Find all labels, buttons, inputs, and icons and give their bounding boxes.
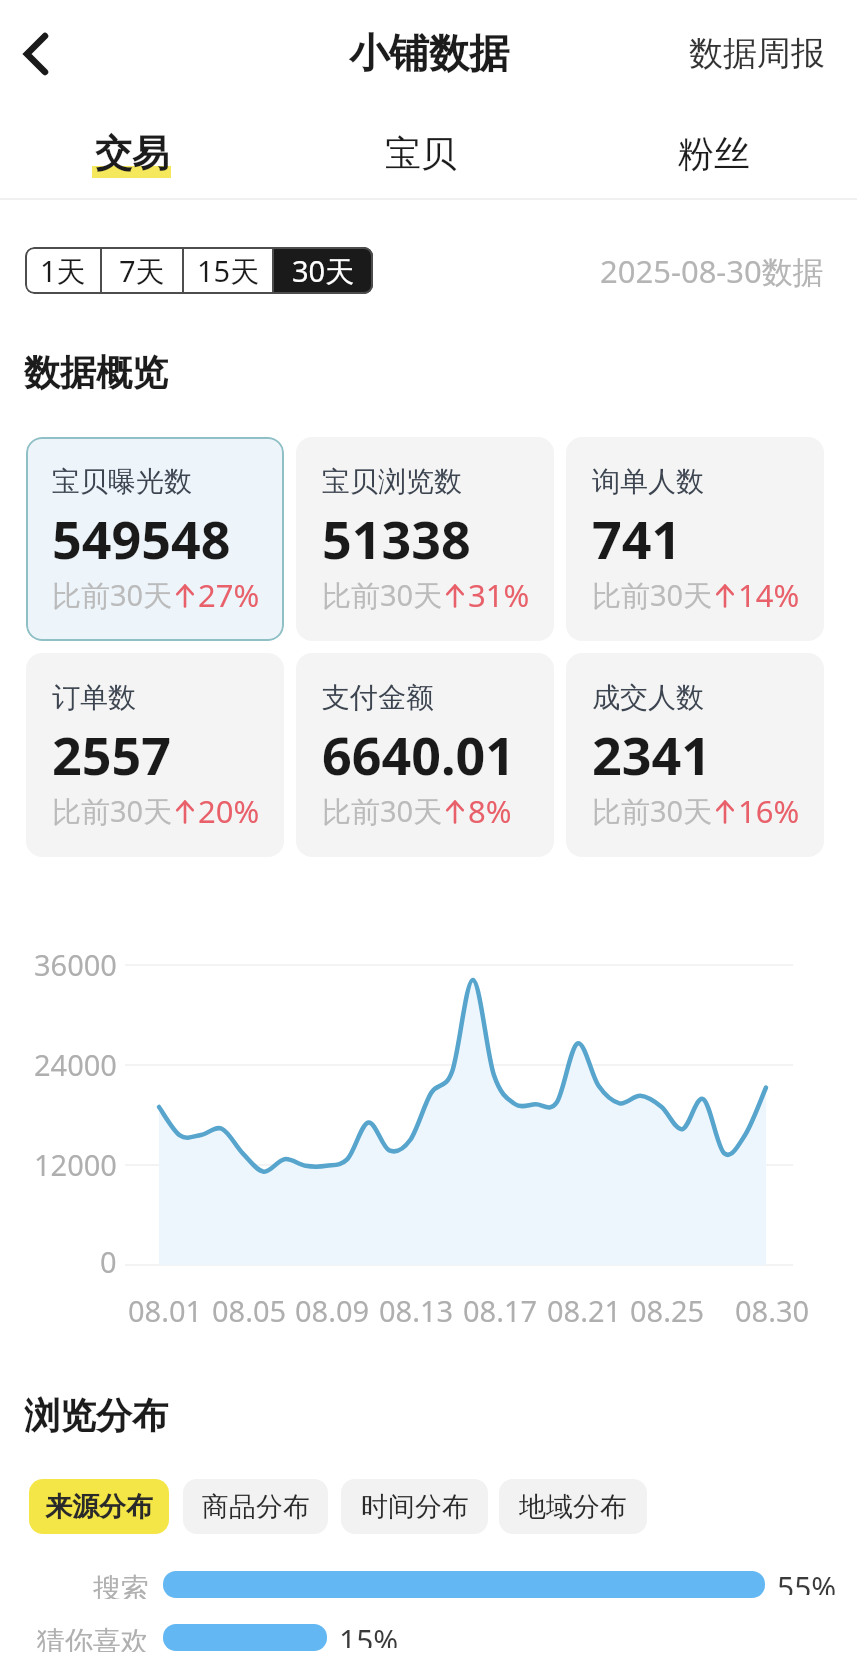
staticText: 比前30天 xyxy=(322,575,443,615)
staticText: 08.09 xyxy=(295,1291,370,1330)
button[interactable]: 数据周报 xyxy=(689,20,825,86)
button[interactable]: 支付金额 xyxy=(296,653,554,857)
staticText: 741 xyxy=(592,503,682,574)
staticText: 比前30天 xyxy=(52,791,173,831)
button[interactable]: 15天 xyxy=(184,247,272,294)
staticText: 08.25 xyxy=(630,1291,705,1330)
staticText: 宝贝浏览数 xyxy=(322,464,462,499)
staticText: 订单数 xyxy=(52,680,136,715)
staticText: 08.01 xyxy=(128,1291,203,1330)
staticText: 51338 xyxy=(322,503,471,574)
staticText: 27% xyxy=(198,574,260,616)
staticText: 商品分布 xyxy=(202,1490,310,1524)
staticText: 8% xyxy=(468,790,512,832)
button[interactable]: 询单人数 xyxy=(566,437,824,641)
staticText: 6640.01 xyxy=(322,719,516,790)
staticText: 14% xyxy=(738,574,800,616)
button[interactable]: 商品分布 xyxy=(183,1479,328,1534)
button[interactable]: 30天 xyxy=(274,247,373,294)
staticText: 08.30 xyxy=(735,1291,810,1330)
button[interactable]: 宝贝曝光数 xyxy=(26,437,284,641)
staticText: 猜你喜欢 xyxy=(37,1624,149,1652)
staticText: 数据周报 xyxy=(689,32,825,75)
staticText: 12000 xyxy=(34,1145,117,1184)
button[interactable]: 来源分布 xyxy=(29,1479,169,1534)
staticText: 搜索 xyxy=(93,1571,149,1599)
staticText: 55% xyxy=(777,1567,837,1595)
staticText: 来源分布 xyxy=(45,1490,153,1524)
staticText: 支付金额 xyxy=(322,680,434,715)
staticText: 0 xyxy=(100,1242,117,1281)
staticText: 数据概览 xyxy=(24,350,168,395)
button[interactable]: 粉丝 xyxy=(644,108,784,198)
staticText: 时间分布 xyxy=(361,1490,469,1524)
staticText: 小铺数据 xyxy=(349,28,509,78)
staticText: 30天 xyxy=(292,251,355,291)
button[interactable]: 宝贝 xyxy=(351,108,491,198)
staticText: 1天 xyxy=(40,251,86,291)
staticText: 7天 xyxy=(119,251,165,291)
staticText: 宝贝 xyxy=(385,131,457,176)
staticText: 08.21 xyxy=(547,1291,622,1330)
staticText: 36000 xyxy=(34,945,117,984)
staticText: 浏览分布 xyxy=(24,1393,168,1438)
staticText: 2341 xyxy=(592,719,711,790)
staticText: 比前30天 xyxy=(592,791,713,831)
button[interactable]: 时间分布 xyxy=(341,1479,488,1534)
staticText: 08.13 xyxy=(379,1291,454,1330)
staticText: 比前30天 xyxy=(322,791,443,831)
button[interactable]: 1天 xyxy=(25,247,100,294)
button[interactable]: Back xyxy=(4,22,68,86)
button[interactable]: 交易 xyxy=(61,108,201,198)
staticText: 粉丝 xyxy=(678,131,750,176)
staticText: 成交人数 xyxy=(592,680,704,715)
staticText: 24000 xyxy=(34,1045,117,1084)
staticText: 宝贝曝光数 xyxy=(52,464,192,499)
button[interactable]: 7天 xyxy=(102,247,182,294)
staticText: 20% xyxy=(198,790,260,832)
staticText: 08.17 xyxy=(463,1291,538,1330)
staticText: 15% xyxy=(339,1620,399,1648)
staticText: 比前30天 xyxy=(592,575,713,615)
button[interactable]: 订单数 xyxy=(26,653,284,857)
staticText: 31% xyxy=(468,574,530,616)
staticText: 15天 xyxy=(197,251,260,291)
button[interactable]: 地域分布 xyxy=(499,1479,647,1534)
button[interactable]: 宝贝浏览数 xyxy=(296,437,554,641)
button[interactable]: 成交人数 xyxy=(566,653,824,857)
staticText: 比前30天 xyxy=(52,575,173,615)
staticText: 08.05 xyxy=(212,1291,287,1330)
staticText: 交易 xyxy=(95,130,169,177)
staticText: 2557 xyxy=(52,719,171,790)
staticText: 549548 xyxy=(52,503,231,574)
staticText: 16% xyxy=(738,790,800,832)
staticText: 地域分布 xyxy=(519,1490,627,1524)
staticText: 2025-08-30数据 xyxy=(600,250,824,292)
staticText: 询单人数 xyxy=(592,464,704,499)
